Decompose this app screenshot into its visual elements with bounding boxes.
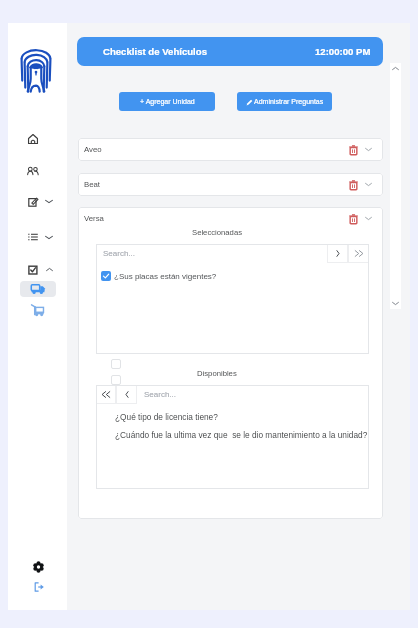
staticText: Disponibles [197,369,237,378]
staticText: Beat [84,180,101,189]
staticText: 12:00:00 PM [315,46,371,57]
button[interactable]: Home [20,130,46,148]
button[interactable]: Users [19,163,47,179]
button[interactable]: Move selected right [327,244,348,263]
staticText: Checklist de Vehículos [103,46,207,57]
staticText: Search... [144,390,177,399]
button[interactable]: Lists [20,229,46,245]
staticText: ¿Qué tipo de licencia tiene? [115,412,218,421]
button[interactable]: Versa [78,207,383,230]
button[interactable]: Logout [34,582,44,592]
button[interactable]: + Agregar Unidad [119,92,215,111]
staticText: Administrar Preguntas [254,98,324,106]
staticText: Versa [84,214,104,223]
button[interactable]: Aveo [78,138,383,161]
button[interactable]: Deliveries [31,304,44,317]
button[interactable]: Settings [33,562,44,572]
button[interactable]: Move all left [96,385,116,404]
button[interactable]: Checklists [20,261,46,279]
staticText: + Agregar Unidad [140,98,195,106]
button[interactable]: Checklist de Vehículos [77,37,383,66]
button[interactable]: Move all right [348,244,369,263]
staticText: ¿Cuándo fue la ultima vez que se le dio … [115,430,368,439]
button[interactable]: Beat [78,173,383,196]
button[interactable]: ¿Cuándo fue la ultima vez que se le dio … [112,427,383,445]
staticText: Aveo [84,145,102,154]
staticText: ¿Sus placas están vigentes? [114,272,217,281]
button[interactable]: Move selected left [116,385,137,404]
button[interactable]: Edit [20,193,46,211]
staticText: Seleccionadas [192,228,243,237]
button[interactable]: Administrar Preguntas [237,92,332,111]
staticText: Search... [103,249,136,258]
button[interactable]: Vehicles [20,281,56,297]
button[interactable]: ¿Qué tipo de licencia tiene? [112,409,383,427]
